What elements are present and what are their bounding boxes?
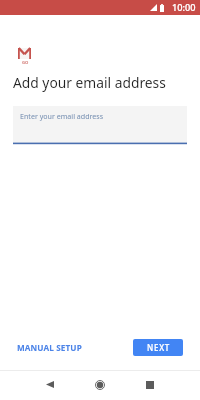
staticText: 10:00 [172, 1, 196, 14]
button[interactable]: Back [25, 371, 75, 398]
button[interactable]: MANUAL SETUP [11, 337, 88, 358]
staticText: Enter your email address [20, 111, 104, 121]
button[interactable]: NEXT [133, 339, 183, 356]
staticText: GO [22, 60, 29, 66]
button[interactable]: Home [75, 371, 125, 398]
staticText: Add your email address [13, 73, 166, 92]
staticText: MANUAL SETUP [17, 342, 82, 353]
button[interactable]: Recent apps [125, 371, 175, 398]
staticText: NEXT [147, 342, 170, 353]
button[interactable]: Enter your email address [13, 106, 187, 145]
